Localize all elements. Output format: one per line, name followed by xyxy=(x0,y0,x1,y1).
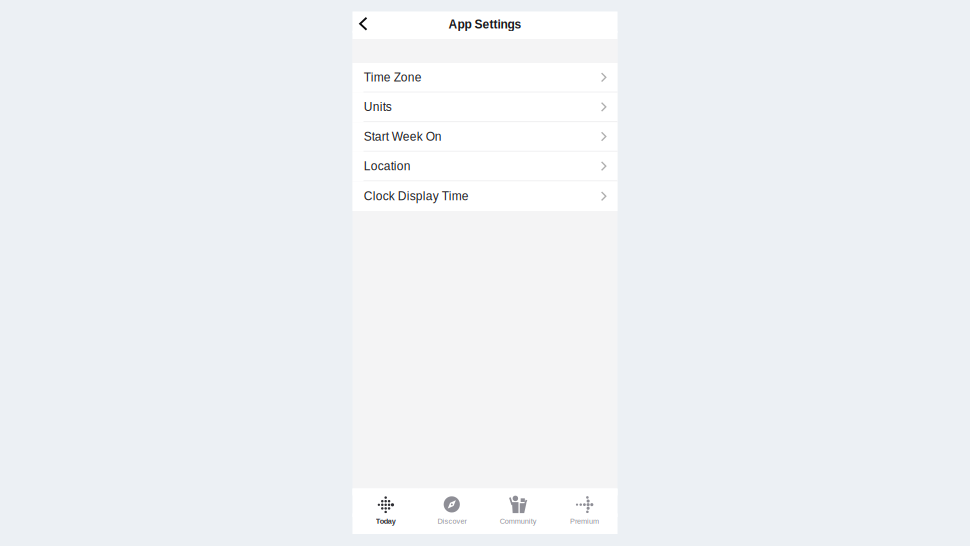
button[interactable]: Location xyxy=(352,152,617,181)
button[interactable]: Discover xyxy=(419,488,485,534)
staticText: Discover xyxy=(437,517,466,525)
button[interactable]: Units xyxy=(352,93,617,122)
staticText: Start Week On xyxy=(364,130,442,143)
button[interactable]: Community xyxy=(485,488,551,534)
staticText: Today xyxy=(376,517,396,525)
button[interactable]: Start Week On xyxy=(352,122,617,152)
button[interactable]: Today xyxy=(352,488,419,534)
staticText: Time Zone xyxy=(364,71,422,84)
button[interactable]: Premium xyxy=(551,488,617,534)
button[interactable]: Time Zone xyxy=(352,63,617,93)
staticText: App Settings xyxy=(448,17,521,31)
staticText: Premium xyxy=(570,517,599,525)
staticText: Clock Display Time xyxy=(364,189,469,203)
staticText: Location xyxy=(364,159,411,173)
staticText: Units xyxy=(364,100,392,114)
staticText: Community xyxy=(500,517,537,525)
button[interactable]: Back xyxy=(352,13,377,38)
button[interactable]: Clock Display Time xyxy=(352,181,617,211)
